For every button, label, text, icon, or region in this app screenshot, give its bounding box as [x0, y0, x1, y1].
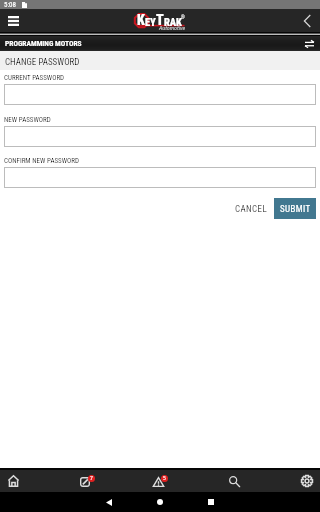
button[interactable]: [4, 126, 316, 147]
button[interactable]: SUBMIT: [274, 198, 316, 219]
button[interactable]: CANCEL: [229, 198, 274, 219]
button[interactable]: Back: [88, 492, 130, 512]
staticText: 7: [90, 475, 93, 482]
button[interactable]: Work orders: [78, 470, 96, 492]
staticText: RAK: [164, 16, 182, 28]
staticText: NEW PASSWORD: [4, 116, 51, 124]
button[interactable]: [4, 167, 316, 188]
staticText: CONFIRM NEW PASSWORD: [4, 157, 79, 165]
staticText: SUBMIT: [280, 204, 311, 215]
button[interactable]: Recents: [190, 492, 232, 512]
button[interactable]: Settings: [298, 470, 316, 492]
button[interactable]: Search: [225, 470, 243, 492]
staticText: PROGRAMMING MOTORS: [5, 39, 82, 48]
staticText: 5:08: [4, 1, 17, 9]
staticText: EY: [145, 16, 156, 28]
staticText: K: [137, 12, 145, 28]
button[interactable]: Alerts: [151, 470, 169, 492]
staticText: CANCEL: [235, 204, 268, 215]
staticText: 5: [163, 475, 166, 482]
staticText: Automotive: [159, 24, 186, 31]
staticText: T: [156, 12, 164, 28]
staticText: CURRENT PASSWORD: [4, 74, 65, 82]
button[interactable]: Home: [139, 492, 181, 512]
staticText: ®: [181, 14, 185, 20]
staticText: CHANGE PASSWORD: [5, 57, 80, 68]
button[interactable]: Transfer: [298, 36, 320, 51]
button[interactable]: Menu: [0, 9, 26, 32]
button[interactable]: Home: [4, 470, 22, 492]
button[interactable]: Back: [294, 9, 320, 32]
button[interactable]: [4, 84, 316, 105]
